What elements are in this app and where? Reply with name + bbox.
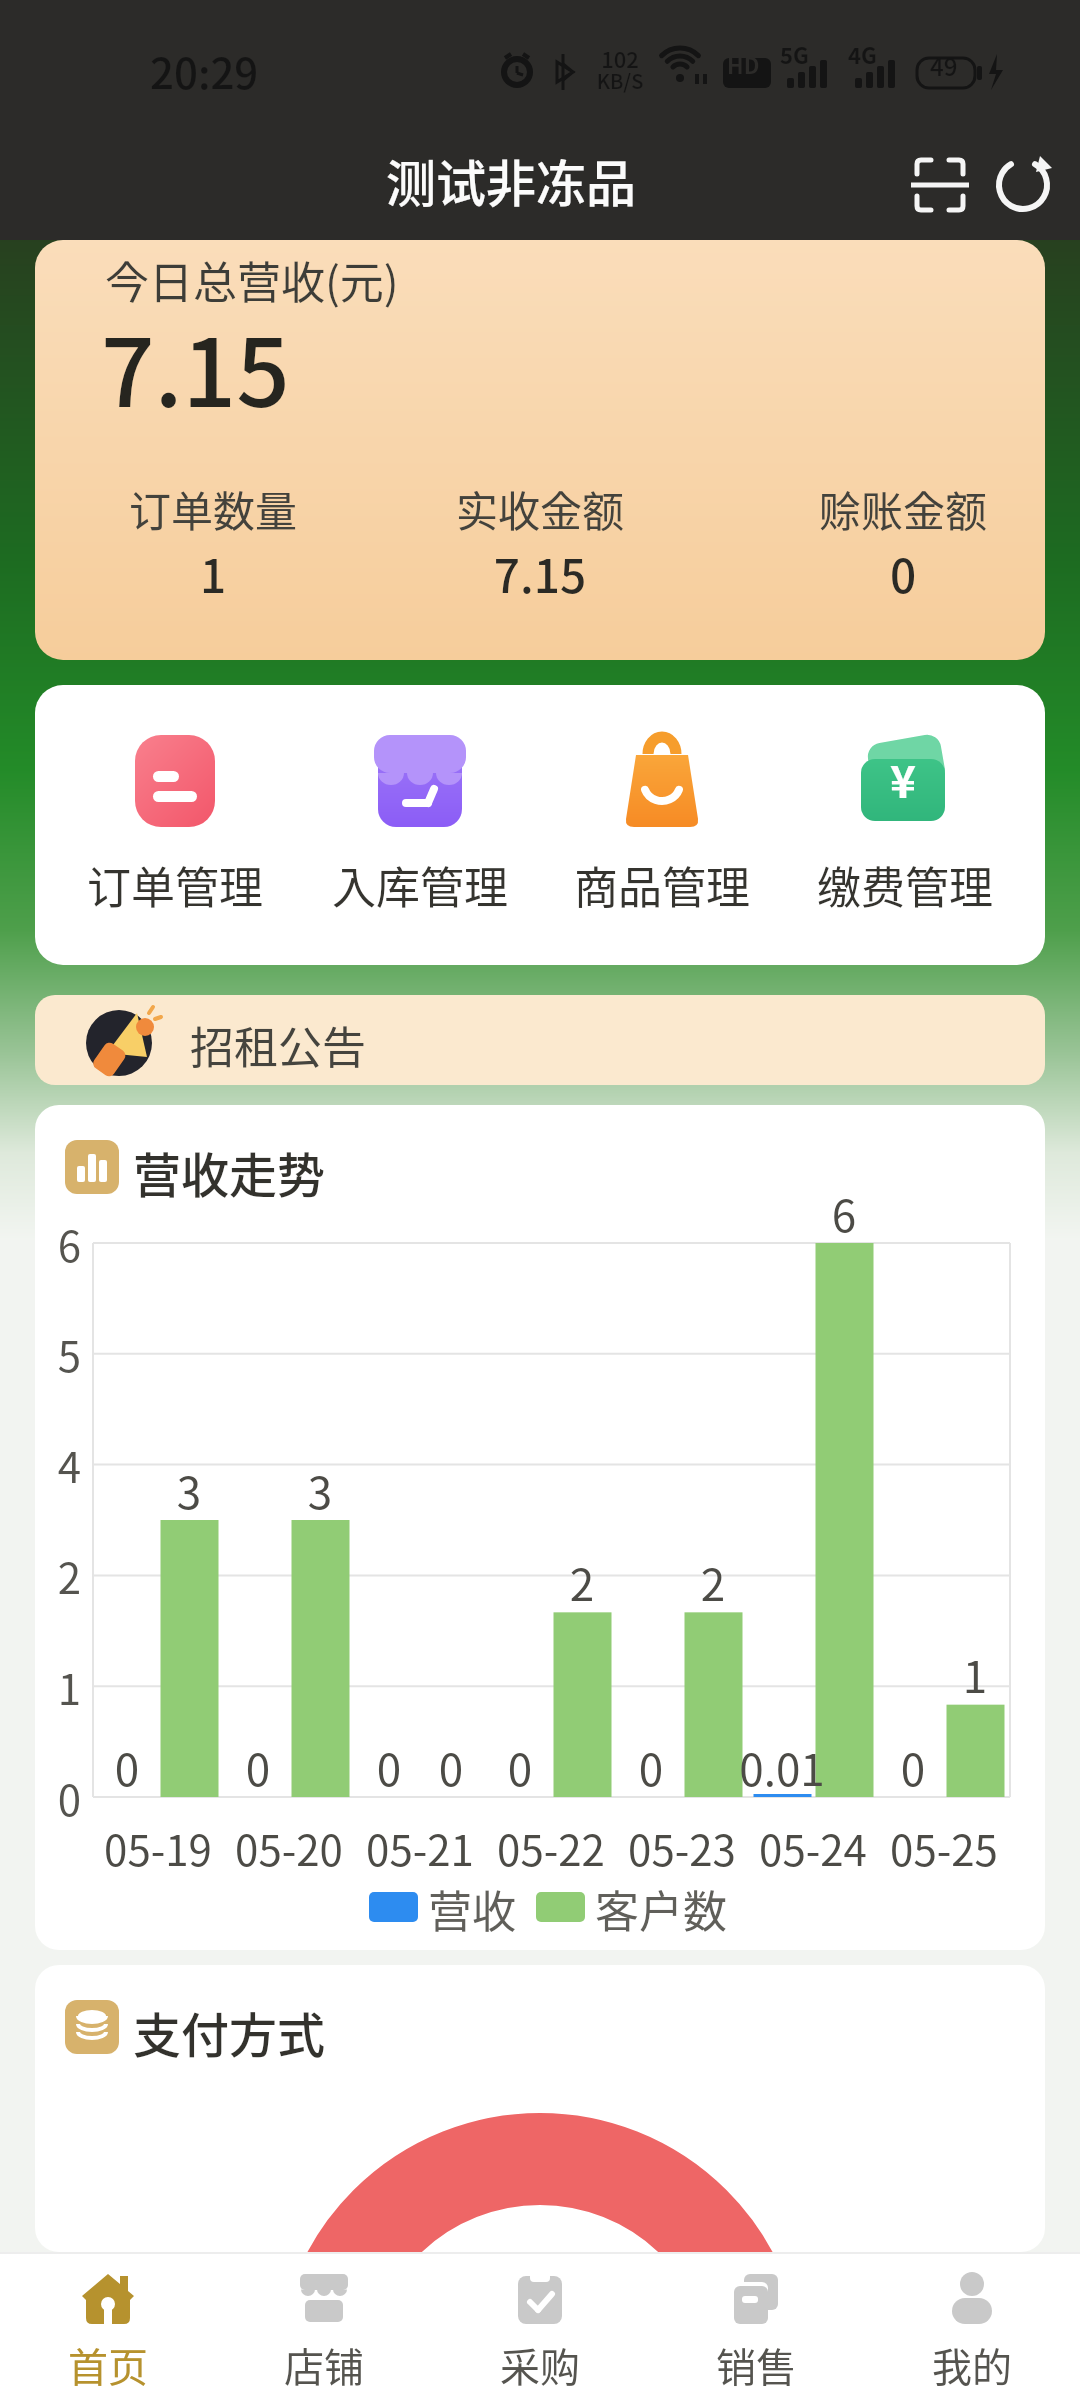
- button[interactable]: 招租公告: [35, 995, 1045, 1085]
- staticText: 支付方式: [133, 1997, 326, 2067]
- staticText: KB/S: [595, 66, 645, 95]
- staticText: 客户数: [595, 1877, 727, 1941]
- staticText: 1: [925, 1642, 1025, 1706]
- staticText: 订单管理: [60, 853, 290, 917]
- staticText: HD: [727, 48, 760, 80]
- staticText: 0: [339, 1735, 439, 1799]
- staticText: 赊账金额: [773, 478, 1033, 539]
- staticText: 我的: [882, 2336, 1062, 2394]
- staticText: 0: [401, 1735, 501, 1799]
- button[interactable]: 销售: [666, 2252, 846, 2400]
- staticText: 订单数量: [83, 478, 343, 539]
- button[interactable]: 订单管理: [60, 725, 290, 945]
- staticText: 05-20: [224, 1817, 354, 1878]
- staticText: 营收走势: [133, 1137, 326, 1207]
- staticText: 5G: [780, 38, 809, 70]
- staticText: 0: [773, 540, 1033, 607]
- staticText: 3: [139, 1458, 239, 1522]
- staticText: 营收: [428, 1877, 516, 1941]
- button[interactable]: [905, 150, 975, 220]
- button[interactable]: 采购: [450, 2252, 630, 2400]
- staticText: 销售: [666, 2336, 846, 2394]
- staticText: 2: [663, 1550, 763, 1614]
- staticText: 1: [35, 1656, 81, 1717]
- staticText: 采购: [450, 2336, 630, 2394]
- button[interactable]: ¥: [790, 725, 1020, 945]
- staticText: 0: [863, 1735, 963, 1799]
- staticText: 首页: [18, 2336, 198, 2394]
- staticText: 7.15: [410, 540, 670, 607]
- staticText: 实收金额: [410, 478, 670, 539]
- button[interactable]: 我的: [882, 2252, 1062, 2400]
- button[interactable]: [988, 150, 1058, 220]
- staticText: 招租公告: [190, 1013, 366, 1077]
- staticText: 3: [270, 1458, 370, 1522]
- button[interactable]: 入库管理: [305, 725, 535, 945]
- button[interactable]: 首页: [18, 2252, 198, 2400]
- staticText: 05-22: [486, 1817, 616, 1878]
- staticText: 0.01: [732, 1735, 832, 1799]
- button[interactable]: 商品管理: [547, 725, 777, 945]
- staticText: 2: [35, 1545, 81, 1606]
- staticText: 5: [35, 1323, 81, 1384]
- staticText: 入库管理: [305, 853, 535, 917]
- staticText: 商品管理: [547, 853, 777, 917]
- staticText: 缴费管理: [790, 853, 1020, 917]
- staticText: 2: [532, 1550, 632, 1614]
- staticText: 0: [208, 1735, 308, 1799]
- staticText: 0: [77, 1735, 177, 1799]
- staticText: 7.15: [101, 298, 290, 434]
- staticText: 05-25: [879, 1817, 1009, 1878]
- staticText: 店铺: [234, 2336, 414, 2394]
- button[interactable]: 今日总营收(元): [35, 240, 1045, 660]
- staticText: 6: [794, 1181, 894, 1245]
- staticText: 4: [35, 1434, 81, 1495]
- staticText: 20:29: [150, 40, 259, 101]
- staticText: 05-19: [93, 1817, 223, 1878]
- staticText: ¥: [890, 747, 916, 811]
- staticText: 49: [930, 48, 958, 83]
- staticText: 测试非冻品: [386, 144, 636, 216]
- staticText: 102: [595, 42, 645, 74]
- button[interactable]: 店铺: [234, 2252, 414, 2400]
- staticText: 6: [35, 1213, 81, 1274]
- staticText: 0: [35, 1767, 81, 1828]
- staticText: 05-24: [748, 1817, 878, 1878]
- staticText: 今日总营收(元): [105, 248, 399, 312]
- staticText: 1: [83, 540, 343, 607]
- staticText: 0: [601, 1735, 701, 1799]
- staticText: 05-23: [617, 1817, 747, 1878]
- staticText: 05-21: [355, 1817, 485, 1878]
- staticText: 4G: [848, 38, 877, 70]
- staticText: 0: [470, 1735, 570, 1799]
